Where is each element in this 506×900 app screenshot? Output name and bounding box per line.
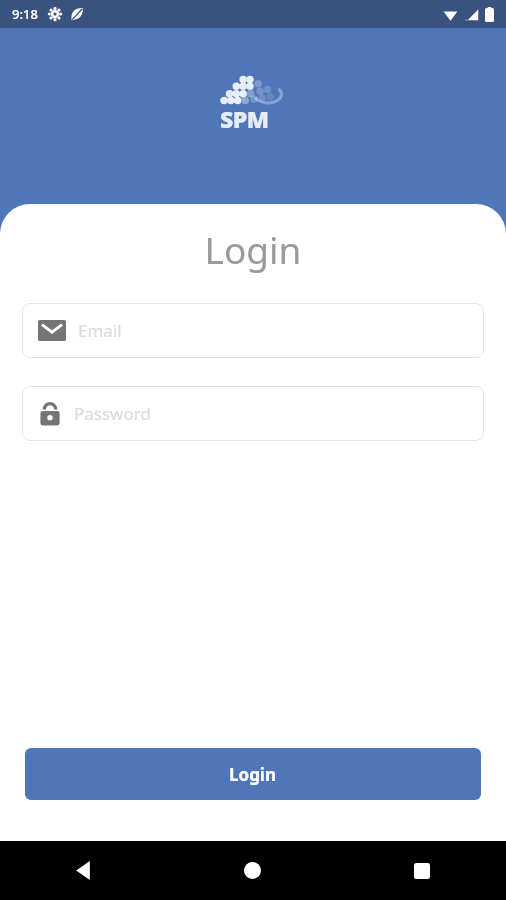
button[interactable]: Login: [25, 748, 481, 800]
staticText: 9:18: [12, 5, 38, 23]
button[interactable]: Email: [22, 303, 484, 358]
staticText: Login: [229, 763, 277, 786]
staticText: Password: [74, 402, 151, 425]
button[interactable]: Home: [168, 841, 337, 900]
button[interactable]: Back: [0, 841, 168, 900]
staticText: Login: [0, 224, 506, 274]
button[interactable]: Recent apps: [337, 841, 506, 900]
button[interactable]: Password: [22, 386, 484, 441]
staticText: SPM: [220, 103, 269, 134]
staticText: Email: [78, 319, 122, 342]
